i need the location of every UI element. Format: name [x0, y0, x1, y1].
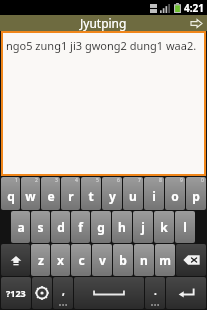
staticText: z	[38, 252, 44, 268]
staticText: .	[154, 284, 157, 298]
staticText: g	[97, 219, 105, 235]
staticText: y	[109, 188, 116, 204]
staticText: 0	[201, 177, 204, 184]
staticText: 4	[75, 177, 78, 184]
staticText: 5	[96, 177, 99, 184]
button[interactable]: 1	[1, 177, 20, 210]
button[interactable]: 3	[41, 177, 60, 210]
staticText: 6	[117, 177, 120, 184]
staticText: o	[171, 188, 179, 204]
button[interactable]: x	[51, 244, 70, 276]
staticText: Jyutping	[80, 15, 127, 31]
staticText: 8	[159, 177, 162, 184]
staticText: l	[183, 219, 187, 235]
staticText: 9	[180, 177, 183, 184]
button[interactable]: 4	[61, 177, 80, 210]
button[interactable]: Space	[74, 277, 144, 309]
staticText: h	[118, 219, 126, 235]
button[interactable]: f	[71, 211, 90, 243]
button[interactable]: Delete	[176, 244, 206, 276]
staticText: ,	[62, 284, 65, 298]
button[interactable]: c	[71, 244, 91, 276]
button[interactable]: ngo5 zung1 ji3 gwong2 dung1 waa2.	[1, 31, 206, 176]
staticText: q	[7, 188, 15, 204]
staticText: t	[88, 188, 94, 204]
staticText: p	[192, 188, 200, 204]
button[interactable]: Settings	[32, 277, 52, 309]
button[interactable]: ?123	[1, 277, 31, 309]
button[interactable]: Period	[145, 277, 165, 309]
staticText: j	[141, 219, 145, 235]
button[interactable]: m	[155, 244, 175, 276]
staticText: a	[17, 219, 25, 235]
staticText: i	[152, 188, 156, 204]
button[interactable]: h	[112, 211, 132, 243]
button[interactable]: 0	[186, 177, 206, 210]
button[interactable]: Next	[189, 17, 203, 29]
button[interactable]: s	[31, 211, 50, 243]
staticText: e	[47, 188, 55, 204]
button[interactable]: k	[154, 211, 174, 243]
button[interactable]: 9	[165, 177, 185, 210]
staticText: ngo5 zung1 ji3 gwong2 dung1 waa2.	[6, 38, 197, 53]
button[interactable]: 6	[102, 177, 122, 210]
staticText: w	[25, 188, 36, 204]
button[interactable]: n	[134, 244, 154, 276]
staticText: 1	[15, 177, 18, 184]
button[interactable]: l	[175, 211, 195, 243]
button[interactable]: d	[51, 211, 70, 243]
staticText: m	[159, 252, 171, 268]
button[interactable]: Enter	[166, 277, 206, 309]
staticText: 7	[138, 177, 141, 184]
staticText: ?123	[6, 287, 26, 299]
button[interactable]: 7	[123, 177, 143, 210]
staticText: 4:21	[184, 1, 204, 15]
button[interactable]: j	[133, 211, 153, 243]
button[interactable]: a	[11, 211, 30, 243]
staticText: 2	[35, 177, 38, 184]
button[interactable]: 5	[81, 177, 101, 210]
staticText: x	[57, 252, 64, 268]
staticText: c	[78, 252, 85, 268]
button[interactable]: v	[92, 244, 112, 276]
button[interactable]: z	[31, 244, 50, 276]
button[interactable]: Comma	[53, 277, 73, 309]
staticText: f	[78, 219, 83, 235]
staticText: k	[160, 219, 168, 235]
staticText: 3	[55, 177, 58, 184]
button[interactable]: g	[91, 211, 111, 243]
staticText: r	[68, 188, 74, 204]
staticText: s	[37, 219, 44, 235]
staticText: n	[140, 252, 148, 268]
staticText: d	[57, 219, 65, 235]
staticText: u	[129, 188, 137, 204]
button[interactable]: Shift	[1, 244, 30, 276]
staticText: b	[119, 252, 127, 268]
button[interactable]: 2	[21, 177, 40, 210]
button[interactable]: b	[113, 244, 133, 276]
staticText: v	[99, 252, 106, 268]
button[interactable]: 8	[144, 177, 164, 210]
